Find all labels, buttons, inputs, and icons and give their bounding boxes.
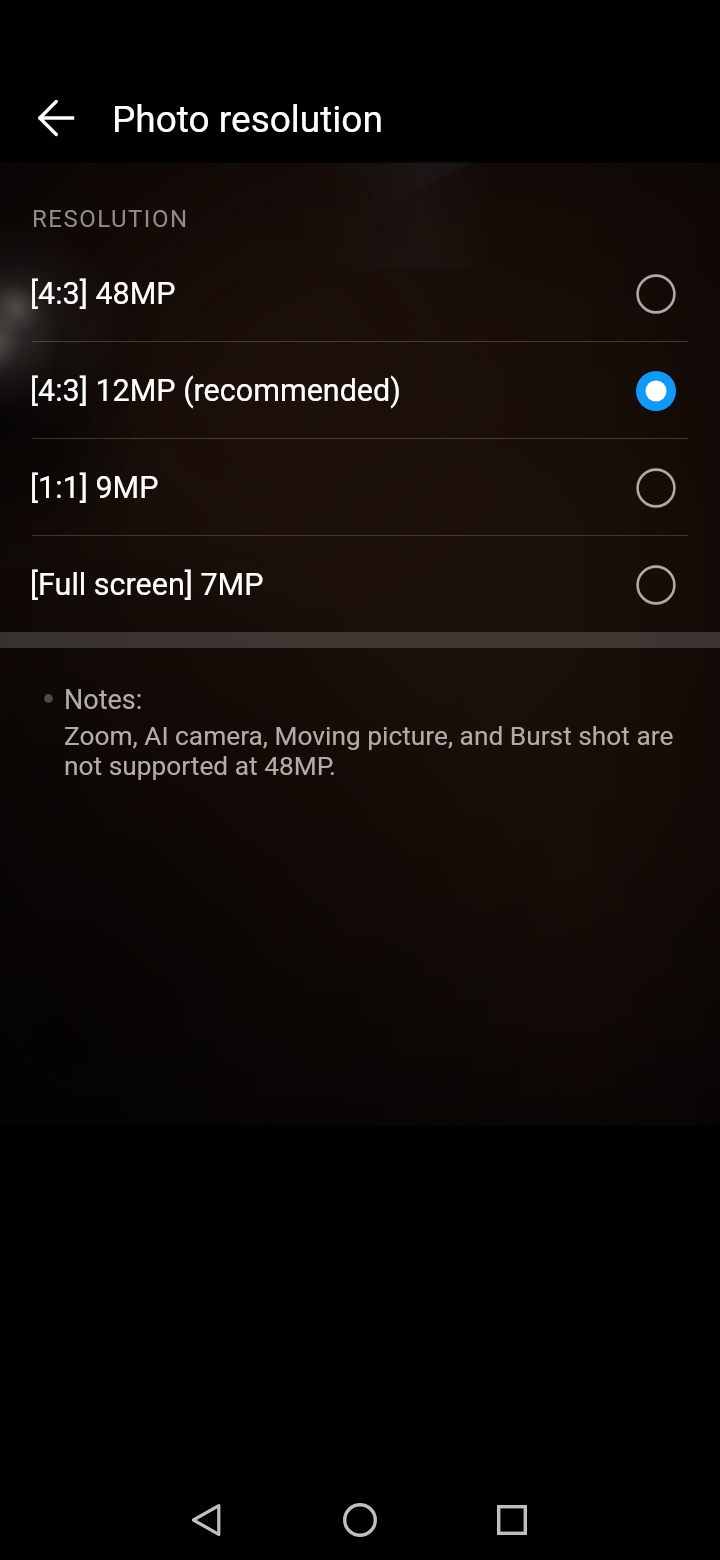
button[interactable]: Back <box>150 1464 262 1560</box>
button[interactable]: [1:1] 9MP <box>0 439 720 536</box>
button[interactable]: Navigate up <box>22 86 90 154</box>
staticText: Zoom, AI camera, Moving picture, and Bur… <box>64 721 704 782</box>
staticText: Notes: <box>64 684 143 716</box>
staticText: [4:3] 12MP (recommended) <box>30 373 401 409</box>
button[interactable]: [4:3] 48MP <box>0 245 720 342</box>
staticText: [4:3] 48MP <box>30 276 176 312</box>
staticText: [1:1] 9MP <box>30 470 159 506</box>
staticText: Photo resolution <box>112 98 383 141</box>
button[interactable]: [Full screen] 7MP <box>0 536 720 633</box>
button[interactable]: [4:3] 12MP (recommended) <box>0 342 720 439</box>
staticText: RESOLUTION <box>32 205 189 233</box>
button[interactable]: Recent apps <box>456 1464 568 1560</box>
button[interactable]: Home <box>304 1464 416 1560</box>
staticText: [Full screen] 7MP <box>30 567 264 603</box>
